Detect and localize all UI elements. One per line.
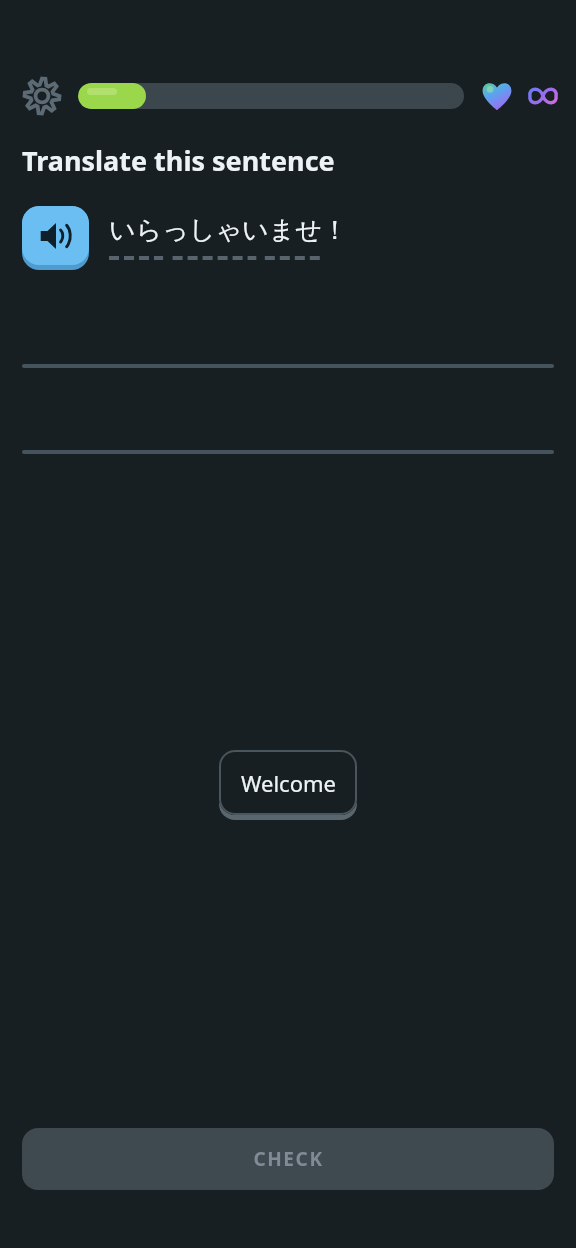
staticText: いらっしゃいませ！	[109, 214, 348, 247]
staticText: Translate this sentence	[22, 142, 335, 179]
button[interactable]: Hearts	[480, 79, 514, 113]
button[interactable]: Welcome	[219, 750, 357, 820]
button[interactable]: Unlimited	[526, 79, 560, 113]
button[interactable]: CHECK	[22, 1128, 554, 1190]
staticText: Welcome	[241, 768, 336, 798]
staticText: CHECK	[253, 1146, 324, 1172]
button[interactable]: Settings	[20, 74, 64, 118]
button[interactable]: Play audio	[22, 206, 89, 270]
